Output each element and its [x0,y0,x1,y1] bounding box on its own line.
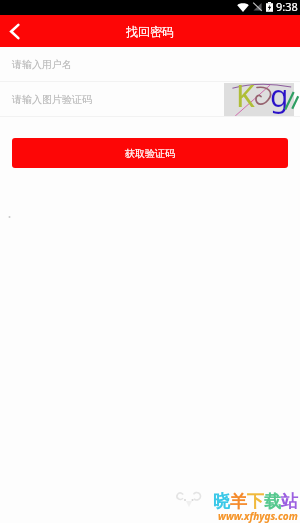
staticText: 获取验证码 [125,147,175,160]
staticText: K [236,75,255,116]
staticText: 请输入用户名 [12,58,72,71]
staticText: 下 [247,491,264,512]
button[interactable]: 获取验证码 [12,138,288,168]
staticText: www.xfhygs.com [218,509,298,523]
staticText: 载 [264,491,281,512]
staticText: 找回密码 [126,24,174,39]
staticText: 请输入图片验证码 [12,93,92,106]
button[interactable]: 请输入图片验证码 [0,82,300,116]
button[interactable]: 请输入用户名 [0,47,300,81]
staticText: 羊 [230,491,247,512]
staticText: 9:38 [276,0,298,14]
staticText: 晓 [213,491,230,512]
staticText: g [270,75,289,116]
staticText: 站 [281,491,298,512]
button[interactable]: Back [0,17,28,45]
button[interactable]: Refresh captcha [224,83,294,116]
